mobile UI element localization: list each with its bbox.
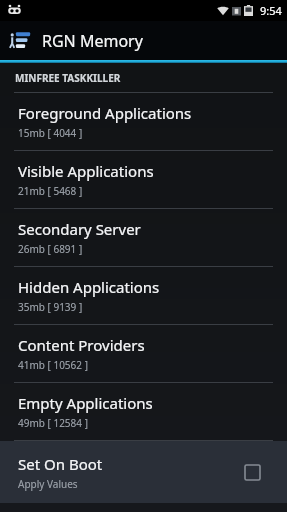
- button[interactable]: Hidden Applications: [0, 267, 287, 324]
- staticText: Hidden Applications: [18, 277, 160, 297]
- staticText: 49mb [ 12584 ]: [18, 416, 88, 430]
- staticText: RGN Memory: [42, 30, 143, 52]
- staticText: Apply Values: [18, 477, 78, 491]
- button[interactable]: Secondary Server: [0, 209, 287, 266]
- staticText: 15mb [ 4044 ]: [18, 126, 83, 140]
- staticText: 21mb [ 5468 ]: [18, 184, 83, 198]
- staticText: Set On Boot: [18, 454, 103, 474]
- staticText: Secondary Server: [18, 219, 141, 239]
- button[interactable]: Set On Boot: [0, 441, 287, 503]
- staticText: 35mb [ 9139 ]: [18, 300, 83, 314]
- staticText: 26mb [ 6891 ]: [18, 242, 83, 256]
- staticText: Empty Applications: [18, 393, 153, 413]
- button[interactable]: Set On Boot checkbox: [237, 457, 267, 487]
- staticText: Content Providers: [18, 335, 145, 355]
- button[interactable]: Visible Applications: [0, 151, 287, 208]
- button[interactable]: Empty Applications: [0, 383, 287, 440]
- button[interactable]: Foreground Applications: [0, 93, 287, 150]
- button[interactable]: Content Providers: [0, 325, 287, 382]
- staticText: MINFREE TASKKILLER: [15, 71, 121, 85]
- staticText: Visible Applications: [18, 161, 154, 181]
- staticText: 41mb [ 10562 ]: [18, 358, 88, 372]
- staticText: Foreground Applications: [18, 103, 192, 123]
- staticText: 9:54: [260, 3, 282, 18]
